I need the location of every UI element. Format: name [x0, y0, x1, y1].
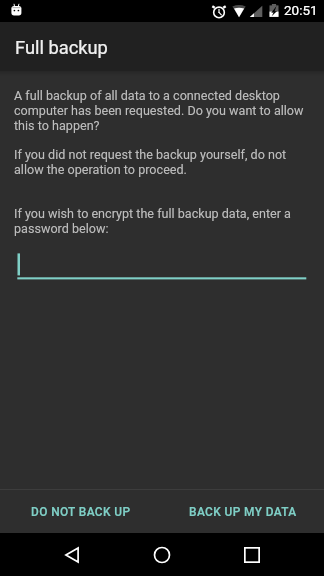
staticText: BACK UP MY DATA — [189, 505, 297, 519]
button[interactable]: Back — [48, 533, 96, 576]
staticText: 20:51 — [284, 2, 318, 18]
button[interactable]: Recent apps — [228, 533, 276, 576]
staticText: If you wish to encrypt the full backup d… — [14, 206, 310, 236]
staticText: If you did not request the backup yourse… — [14, 147, 310, 177]
staticText: A full backup of all data to a connected… — [14, 88, 310, 133]
staticText: Full backup — [15, 37, 108, 58]
staticText: DO NOT BACK UP — [31, 505, 131, 519]
button[interactable]: BACK UP MY DATA — [162, 490, 324, 533]
button[interactable]: DO NOT BACK UP — [0, 490, 162, 533]
button[interactable]: Home — [138, 533, 186, 576]
